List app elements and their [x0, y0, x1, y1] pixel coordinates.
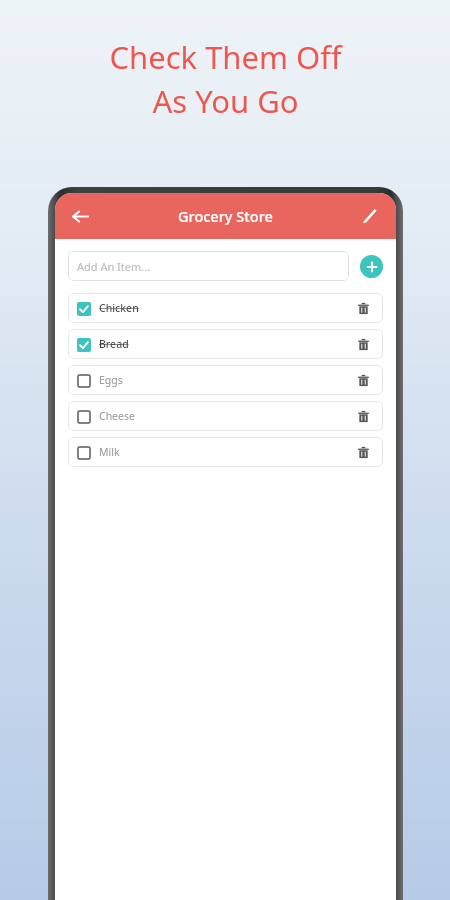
button[interactable]: Delete Cheese — [351, 404, 375, 428]
staticText: Bread — [99, 337, 129, 351]
staticText: Milk — [99, 445, 120, 459]
button[interactable]: Add item — [360, 255, 383, 278]
button[interactable]: Delete Eggs — [351, 368, 375, 392]
staticText: Eggs — [99, 373, 123, 387]
staticText: Check Them Off — [109, 36, 342, 78]
button[interactable]: Milk — [68, 437, 383, 467]
button[interactable]: Bread — [68, 329, 383, 359]
button[interactable]: Edit list — [352, 198, 388, 234]
button[interactable]: Chicken — [68, 293, 383, 323]
button[interactable]: Back — [61, 197, 99, 235]
button[interactable]: Delete Chicken — [351, 296, 375, 320]
button[interactable]: Delete Bread — [351, 332, 375, 356]
button[interactable]: Eggs — [68, 365, 383, 395]
button[interactable]: Cheese — [68, 401, 383, 431]
staticText: Grocery Store — [178, 206, 273, 226]
staticText: Chicken — [99, 301, 139, 315]
button[interactable]: Add An Item... — [68, 251, 349, 281]
staticText: As You Go — [152, 80, 299, 122]
staticText: Cheese — [99, 409, 135, 423]
button[interactable]: Delete Milk — [351, 440, 375, 464]
staticText: Add An Item... — [77, 259, 151, 274]
